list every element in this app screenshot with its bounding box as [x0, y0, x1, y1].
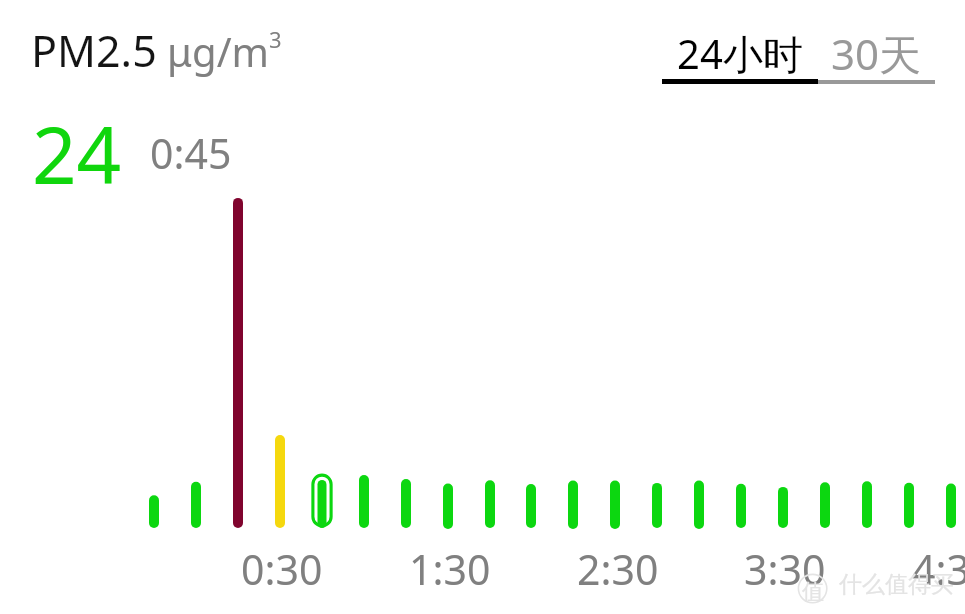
staticText: 4:30	[912, 541, 965, 597]
button[interactable]: PM2.5 sample 16	[804, 472, 846, 538]
button[interactable]: PM2.5 sample 1	[175, 472, 217, 538]
staticText: 24小时	[677, 26, 803, 81]
staticText: PM2.5	[31, 21, 157, 80]
staticText: 30天	[831, 25, 922, 82]
button[interactable]: PM2.5 sample 0	[133, 485, 175, 538]
button[interactable]: PM2.5 sample 11	[594, 470, 636, 539]
button[interactable]: PM2.5 sample 5	[343, 465, 385, 538]
button[interactable]: PM2.5 sample 17	[846, 471, 888, 538]
button[interactable]: PM2.5 sample 3	[259, 425, 301, 538]
button[interactable]: PM2.5 sample 8	[469, 470, 511, 538]
staticText: 24	[32, 101, 122, 207]
button[interactable]: 30天	[818, 18, 935, 84]
button[interactable]: PM2.5 sample 12	[636, 473, 678, 538]
button[interactable]: 24小时	[662, 18, 818, 84]
staticText: 3:30	[744, 541, 826, 597]
button[interactable]: PM2.5 sample 19	[930, 474, 965, 538]
button[interactable]: PM2.5 sample 7	[427, 473, 469, 539]
staticText: 值	[802, 578, 824, 606]
button[interactable]: PM2.5 sample 4	[301, 470, 343, 538]
staticText: μg/m3	[167, 24, 282, 78]
staticText: 0:30	[241, 541, 323, 597]
staticText: 1:30	[409, 541, 491, 597]
button[interactable]: PM2.5 sample 6	[385, 469, 427, 538]
staticText: 0:45	[150, 125, 232, 181]
button[interactable]: PM2.5 sample 18	[888, 473, 930, 538]
button[interactable]: PM2.5 sample 13	[678, 470, 720, 539]
button[interactable]: PM2.5 sample 2	[217, 188, 259, 538]
staticText: 什么值得买	[839, 570, 954, 599]
button[interactable]: PM2.5 sample 14	[720, 474, 762, 538]
staticText: 2:30	[577, 541, 659, 597]
button[interactable]: PM2.5 sample 15	[762, 477, 804, 538]
button[interactable]: PM2.5 sample 9	[510, 474, 552, 538]
button[interactable]: PM2.5 sample 10	[552, 470, 594, 539]
